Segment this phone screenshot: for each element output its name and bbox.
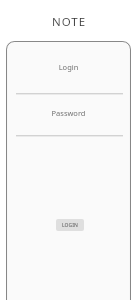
staticText: LOGIN — [62, 222, 78, 229]
staticText: Login — [6, 62, 131, 72]
staticText: NOTE — [0, 14, 138, 30]
staticText: Password — [6, 108, 131, 118]
button[interactable]: LOGIN — [56, 219, 84, 231]
